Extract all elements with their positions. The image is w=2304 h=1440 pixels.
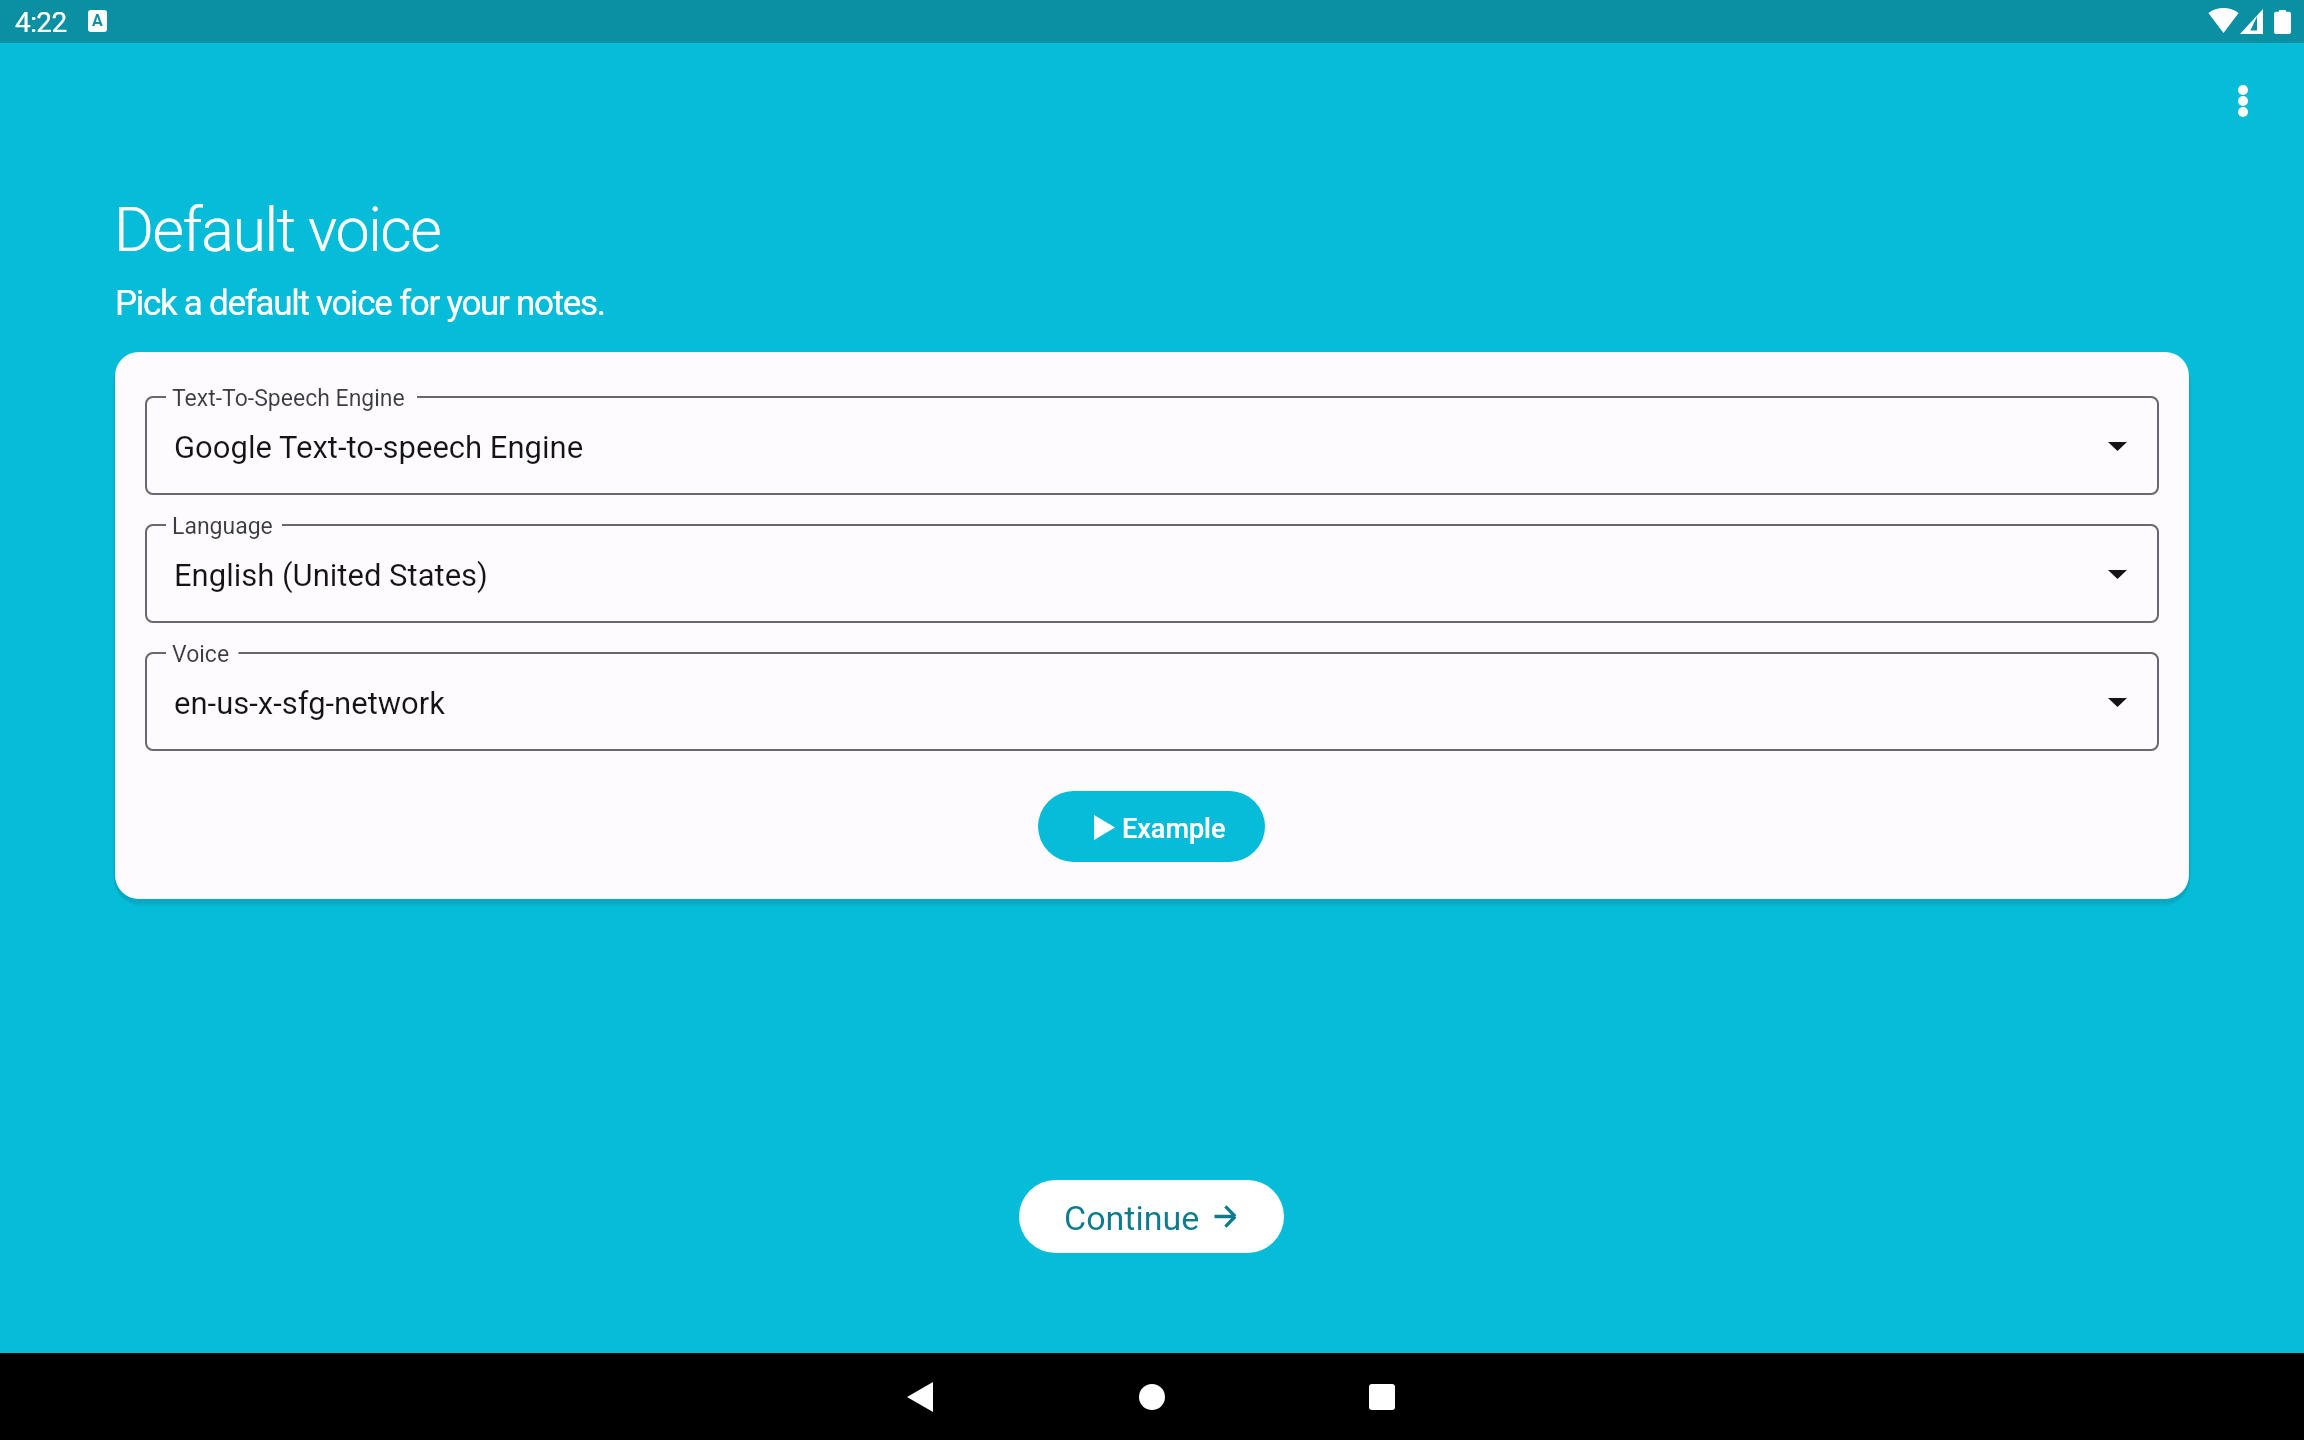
staticText: A bbox=[92, 11, 103, 30]
staticText: 4:22 bbox=[15, 6, 67, 39]
staticText: Text-To-Speech Engine bbox=[172, 385, 405, 412]
staticText: Example bbox=[1122, 813, 1226, 845]
staticText: Default voice bbox=[114, 194, 441, 265]
button[interactable]: Home bbox=[1112, 1357, 1192, 1437]
button[interactable]: Language bbox=[145, 524, 2159, 623]
button[interactable]: Voice bbox=[145, 652, 2159, 751]
staticText: Pick a default voice for your notes. bbox=[115, 283, 605, 324]
staticText: Language bbox=[172, 513, 273, 540]
staticText: English (United States) bbox=[174, 557, 488, 593]
button[interactable]: Example bbox=[1038, 791, 1265, 862]
staticText: en-us-x-sfg-network bbox=[174, 685, 446, 721]
button[interactable]: Text-To-Speech Engine bbox=[145, 396, 2159, 495]
staticText: Voice bbox=[172, 641, 230, 668]
button[interactable]: Continue bbox=[1019, 1180, 1284, 1253]
button[interactable]: More options bbox=[2215, 73, 2271, 129]
staticText: Google Text-to-speech Engine bbox=[174, 429, 584, 465]
staticText: Continue bbox=[1064, 1198, 1200, 1238]
button[interactable]: Back bbox=[880, 1357, 960, 1437]
button[interactable]: Recent apps bbox=[1342, 1357, 1422, 1437]
